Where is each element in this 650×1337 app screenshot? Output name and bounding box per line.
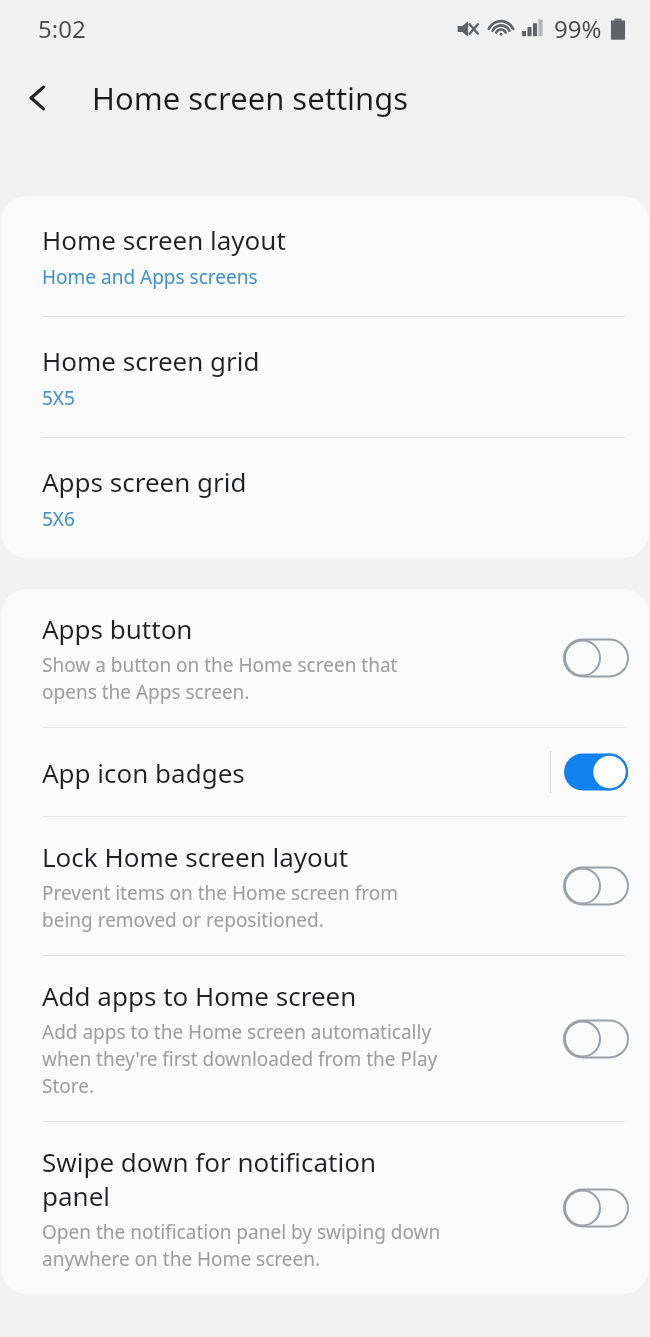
button[interactable]: Apps screen grid xyxy=(1,438,649,558)
button[interactable]: Apps button xyxy=(1,589,649,727)
button[interactable]: Toggle on xyxy=(563,750,629,794)
button[interactable]: App icon badges xyxy=(1,728,649,816)
staticText: Apps button xyxy=(42,611,193,646)
button[interactable]: Lock Home screen layout xyxy=(1,817,649,955)
button[interactable]: Home screen layout xyxy=(1,196,649,316)
staticText: Lock Home screen layout xyxy=(42,839,349,874)
staticText: 5X6 xyxy=(42,506,75,532)
staticText: Show a button on the Home screen that op… xyxy=(42,652,398,705)
button[interactable]: Swipe down for notification panel xyxy=(1,1122,649,1294)
button[interactable]: Toggle off xyxy=(563,636,629,680)
staticText: Apps screen grid xyxy=(42,464,247,499)
staticText: Home screen settings xyxy=(92,77,409,119)
button[interactable]: Add apps to Home screen xyxy=(1,956,649,1121)
staticText: Add apps to the Home screen automaticall… xyxy=(42,1019,438,1099)
staticText: Open the notification panel by swiping d… xyxy=(42,1219,441,1272)
button[interactable]: Toggle off xyxy=(563,1017,629,1061)
staticText: 5X5 xyxy=(42,385,75,411)
staticText: Prevent items on the Home screen from be… xyxy=(42,880,398,933)
staticText: 5:02 xyxy=(38,12,86,45)
staticText: Home screen layout xyxy=(42,222,286,257)
staticText: Home and Apps screens xyxy=(42,264,258,290)
staticText: Add apps to Home screen xyxy=(42,978,357,1013)
staticText: App icon badges xyxy=(42,755,245,790)
button[interactable]: Back xyxy=(0,60,76,136)
staticText: Home screen grid xyxy=(42,343,260,378)
button[interactable]: Toggle off xyxy=(563,1186,629,1230)
staticText: Swipe down for notification panel xyxy=(42,1144,376,1213)
button[interactable]: Toggle off xyxy=(563,864,629,908)
staticText: 99% xyxy=(554,12,602,45)
button[interactable]: Home screen grid xyxy=(1,317,649,437)
